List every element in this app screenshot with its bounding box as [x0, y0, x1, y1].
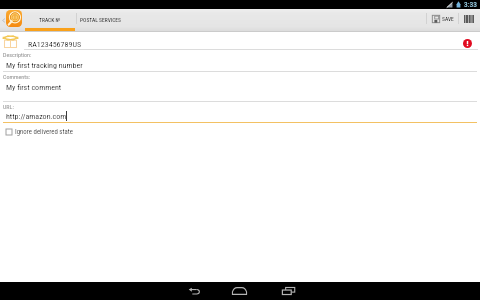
- button[interactable]: Home: [217, 282, 262, 300]
- staticText: RA123456789US: [28, 40, 82, 49]
- button[interactable]: Ignore delivered state: [6, 127, 73, 137]
- staticText: Description:: [3, 51, 32, 58]
- staticText: 3:33: [464, 0, 477, 9]
- staticText: TRACK №: [39, 17, 61, 23]
- button[interactable]: SAVE: [427, 8, 458, 29]
- button[interactable]: Back: [171, 282, 216, 300]
- staticText: URL:: [3, 103, 14, 110]
- button[interactable]: POSTAL SERVICES: [76, 9, 124, 30]
- button[interactable]: App home: [5, 10, 22, 27]
- staticText: My first comment: [6, 83, 62, 92]
- staticText: Ignore delivered state: [15, 128, 73, 136]
- staticText: SAVE: [442, 16, 454, 22]
- staticText: POSTAL SERVICES: [80, 17, 121, 23]
- staticText: Comments:: [3, 73, 31, 80]
- button[interactable]: TRACK №: [25, 9, 75, 30]
- button[interactable]: Scan barcode: [459, 8, 478, 29]
- staticText: http://amazon.com: [6, 112, 67, 121]
- staticText: My first tracking number: [6, 61, 83, 70]
- button[interactable]: Recent apps: [266, 282, 311, 300]
- button[interactable]: Error: [463, 39, 472, 48]
